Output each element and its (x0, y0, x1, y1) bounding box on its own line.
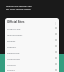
staticText: Manufacturer (7, 33, 23, 36)
staticText: Official Sites (7, 20, 25, 24)
staticText: Community (7, 57, 21, 60)
staticText: Downloads (7, 51, 20, 54)
staticText: Privacy (7, 68, 15, 71)
staticText: for your device today (6, 7, 31, 10)
button[interactable]: Privacy (5, 67, 59, 72)
button[interactable]: More options (53, 20, 57, 24)
button[interactable]: Contact (5, 61, 59, 67)
staticText: Contact (7, 63, 16, 66)
staticText: Retailer (7, 39, 16, 42)
staticText: Product site (7, 27, 21, 30)
button[interactable]: Product site (5, 25, 59, 31)
staticText: Support (7, 45, 17, 48)
button[interactable]: Community (5, 55, 59, 61)
button[interactable]: Support (5, 43, 59, 49)
staticText: Search the official site (6, 4, 32, 7)
button[interactable]: Official Sites (5, 18, 59, 25)
button[interactable]: Retailer (5, 37, 59, 43)
staticText: ⋮ (54, 21, 57, 24)
button[interactable]: Manufacturer (5, 31, 59, 37)
button[interactable]: Downloads (5, 49, 59, 55)
